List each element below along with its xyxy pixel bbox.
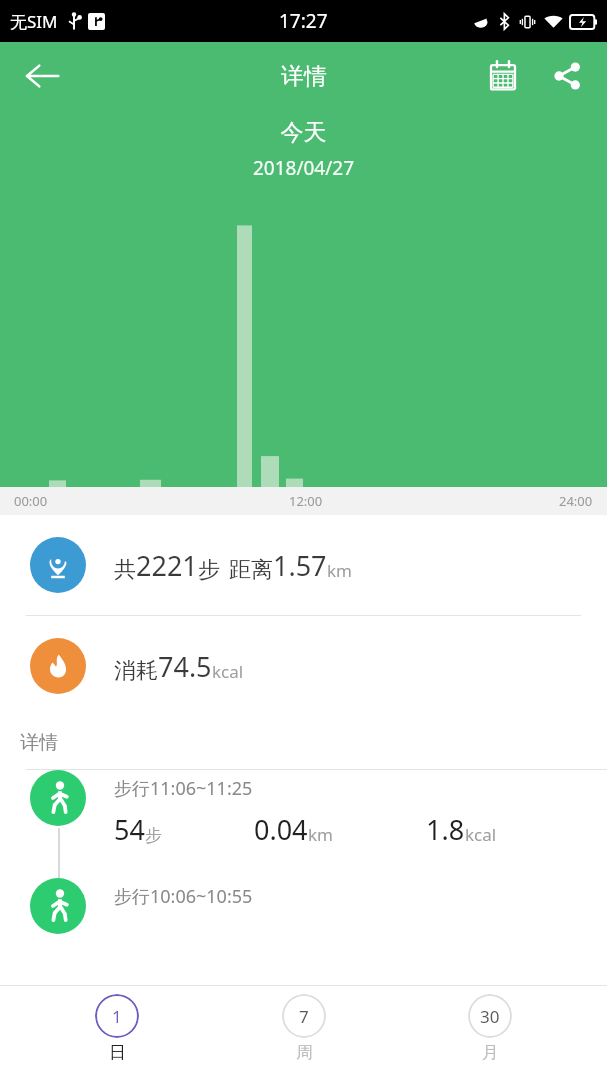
staticText: 共 bbox=[114, 556, 136, 584]
staticText: 0.04 bbox=[254, 811, 308, 848]
staticText: kcal bbox=[465, 823, 497, 846]
staticText: 7 bbox=[299, 1005, 309, 1028]
button[interactable]: 步行11:06~11:25 bbox=[0, 770, 607, 848]
staticText: 1.8 bbox=[426, 811, 465, 848]
staticText: 2018/04/27 bbox=[0, 155, 607, 181]
staticText: km bbox=[327, 559, 352, 582]
button[interactable]: 7 bbox=[234, 986, 374, 1063]
staticText: 今天 bbox=[0, 118, 607, 147]
staticText: 74.5 bbox=[158, 648, 212, 685]
staticText: 54 bbox=[114, 811, 145, 848]
staticText: kcal bbox=[212, 660, 244, 683]
staticText: 无SIM bbox=[10, 10, 58, 33]
staticText: 17:27 bbox=[279, 8, 328, 34]
staticText: 12:00 bbox=[289, 492, 323, 510]
staticText: 1 bbox=[112, 1005, 122, 1028]
staticText: km bbox=[308, 823, 333, 846]
staticText: 周 bbox=[296, 1042, 313, 1063]
staticText: 步 bbox=[198, 556, 220, 584]
staticText: 步行11:06~11:25 bbox=[114, 776, 253, 801]
staticText: 日 bbox=[109, 1042, 126, 1063]
staticText: 2221 bbox=[136, 547, 198, 584]
button[interactable]: 共 bbox=[0, 515, 607, 616]
button[interactable]: Share bbox=[541, 50, 593, 102]
button[interactable]: 30 bbox=[420, 986, 560, 1063]
staticText: 24:00 bbox=[559, 492, 593, 510]
staticText: 详情 bbox=[20, 731, 58, 755]
staticText: 步 bbox=[145, 825, 162, 846]
staticText: 月 bbox=[482, 1042, 499, 1063]
staticText: 30 bbox=[480, 1005, 500, 1028]
staticText: 步行10:06~10:55 bbox=[114, 884, 253, 909]
button[interactable]: 消耗 bbox=[0, 616, 607, 716]
button[interactable]: Calendar bbox=[477, 50, 529, 102]
button[interactable]: 步行10:06~10:55 bbox=[0, 878, 607, 934]
staticText: 00:00 bbox=[14, 492, 48, 510]
button[interactable]: 1 bbox=[47, 986, 187, 1063]
staticText: 1.57 bbox=[273, 547, 327, 584]
button[interactable]: Back bbox=[14, 48, 70, 104]
staticText: 消耗 bbox=[114, 657, 158, 685]
staticText: 详情 bbox=[281, 62, 327, 91]
staticText: 距离 bbox=[229, 556, 273, 584]
